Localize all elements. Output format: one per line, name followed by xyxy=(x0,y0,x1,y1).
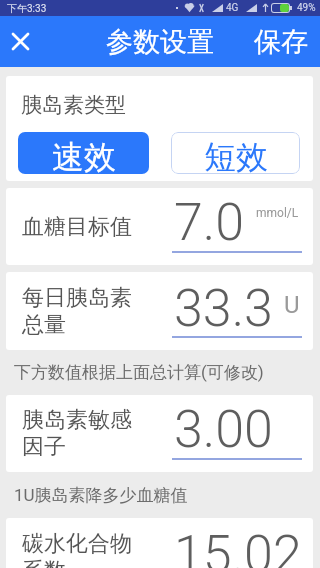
staticText: 下午3:33 xyxy=(7,2,47,15)
button[interactable]: 保存 xyxy=(242,16,320,67)
staticText: 血糖目标值 xyxy=(22,213,132,241)
button[interactable]: 每日胰岛素 总量 xyxy=(6,272,313,350)
button[interactable]: 速效 xyxy=(18,132,149,174)
button[interactable]: 关闭 xyxy=(0,21,41,62)
staticText: 参数设置 xyxy=(106,25,214,59)
staticText: 15.02 xyxy=(174,524,302,568)
staticText: 4G xyxy=(226,2,239,14)
button[interactable]: 血糖目标值 xyxy=(6,188,313,265)
staticText: 保存 xyxy=(254,25,308,59)
staticText: 49% xyxy=(297,2,316,14)
staticText: 33.3 xyxy=(174,278,273,339)
staticText: 下方数值根据上面总计算(可修改) xyxy=(14,362,264,383)
button[interactable]: 短效 xyxy=(171,132,300,174)
button[interactable]: 碳水化合物 系数 xyxy=(6,518,313,568)
staticText: 胰岛素敏感 因子 xyxy=(22,406,132,461)
staticText: mmol/L xyxy=(256,206,299,220)
staticText: U xyxy=(284,291,300,319)
staticText: 每日胰岛素 总量 xyxy=(22,284,132,339)
button[interactable]: 胰岛素敏感 因子 xyxy=(6,395,313,472)
staticText: 速效 xyxy=(52,137,116,174)
staticText: 7.0 xyxy=(174,192,245,253)
staticText: 短效 xyxy=(204,137,268,174)
staticText: 碳水化合物 系数 xyxy=(22,530,132,568)
staticText: 3.00 xyxy=(174,399,273,460)
staticText: 胰岛素类型 xyxy=(21,92,126,118)
staticText: 1U胰岛素降多少血糖值 xyxy=(14,485,188,506)
